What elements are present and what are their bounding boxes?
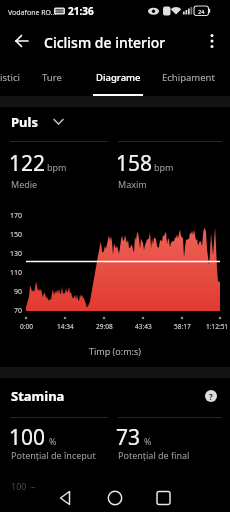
staticText: Potențial de final bbox=[118, 449, 190, 461]
staticText: % bbox=[144, 435, 152, 447]
button[interactable] bbox=[143, 486, 183, 512]
staticText: 0:00 bbox=[20, 322, 33, 331]
staticText: 24 bbox=[198, 8, 205, 15]
staticText: Vodafone RO... bbox=[8, 8, 57, 18]
staticText: 14:34 bbox=[57, 322, 74, 331]
staticText: 130 bbox=[10, 249, 23, 259]
button[interactable]: istici bbox=[0, 0, 20, 13]
staticText: 150 bbox=[10, 230, 23, 240]
button[interactable]: Ture bbox=[0, 0, 60, 13]
staticText: 73 bbox=[116, 423, 141, 452]
button[interactable] bbox=[95, 486, 135, 512]
button[interactable]: ? bbox=[205, 390, 217, 402]
staticText: Ciclism de interior bbox=[44, 33, 166, 52]
staticText: Ture bbox=[42, 71, 62, 84]
staticText: 21:36 bbox=[68, 4, 94, 18]
staticText: 70 bbox=[14, 306, 23, 316]
button[interactable]: Diagrame bbox=[0, 0, 70, 13]
staticText: Diagrame bbox=[96, 71, 141, 84]
staticText: 29:08 bbox=[96, 322, 113, 331]
staticText: 110 bbox=[10, 268, 23, 278]
staticText: 122 bbox=[9, 149, 46, 178]
staticText: bpm bbox=[47, 161, 67, 173]
staticText: 158 bbox=[116, 149, 153, 178]
staticText: 90 bbox=[14, 287, 23, 297]
staticText: 100 bbox=[9, 423, 46, 452]
button[interactable] bbox=[202, 30, 222, 52]
staticText: % bbox=[49, 435, 57, 447]
staticText: Echipament bbox=[162, 71, 215, 84]
staticText: 43:43 bbox=[135, 322, 152, 331]
staticText: 1:12:51 bbox=[206, 322, 229, 331]
button[interactable]: Puls bbox=[0, 0, 27, 18]
staticText: Maxim bbox=[118, 178, 147, 190]
staticText: bpm bbox=[154, 161, 174, 173]
staticText: ? bbox=[209, 391, 213, 402]
button[interactable]: Echipament bbox=[0, 0, 70, 13]
staticText: Timp (o:m:s) bbox=[89, 345, 142, 357]
staticText: Potențial de început bbox=[11, 449, 96, 461]
button[interactable] bbox=[8, 30, 36, 52]
staticText: 58:17 bbox=[174, 322, 191, 331]
button[interactable] bbox=[50, 486, 90, 512]
staticText: 170 bbox=[10, 211, 23, 221]
staticText: Stamina bbox=[11, 387, 65, 405]
staticText: 100 – bbox=[11, 480, 36, 492]
staticText: Medie bbox=[11, 178, 38, 190]
